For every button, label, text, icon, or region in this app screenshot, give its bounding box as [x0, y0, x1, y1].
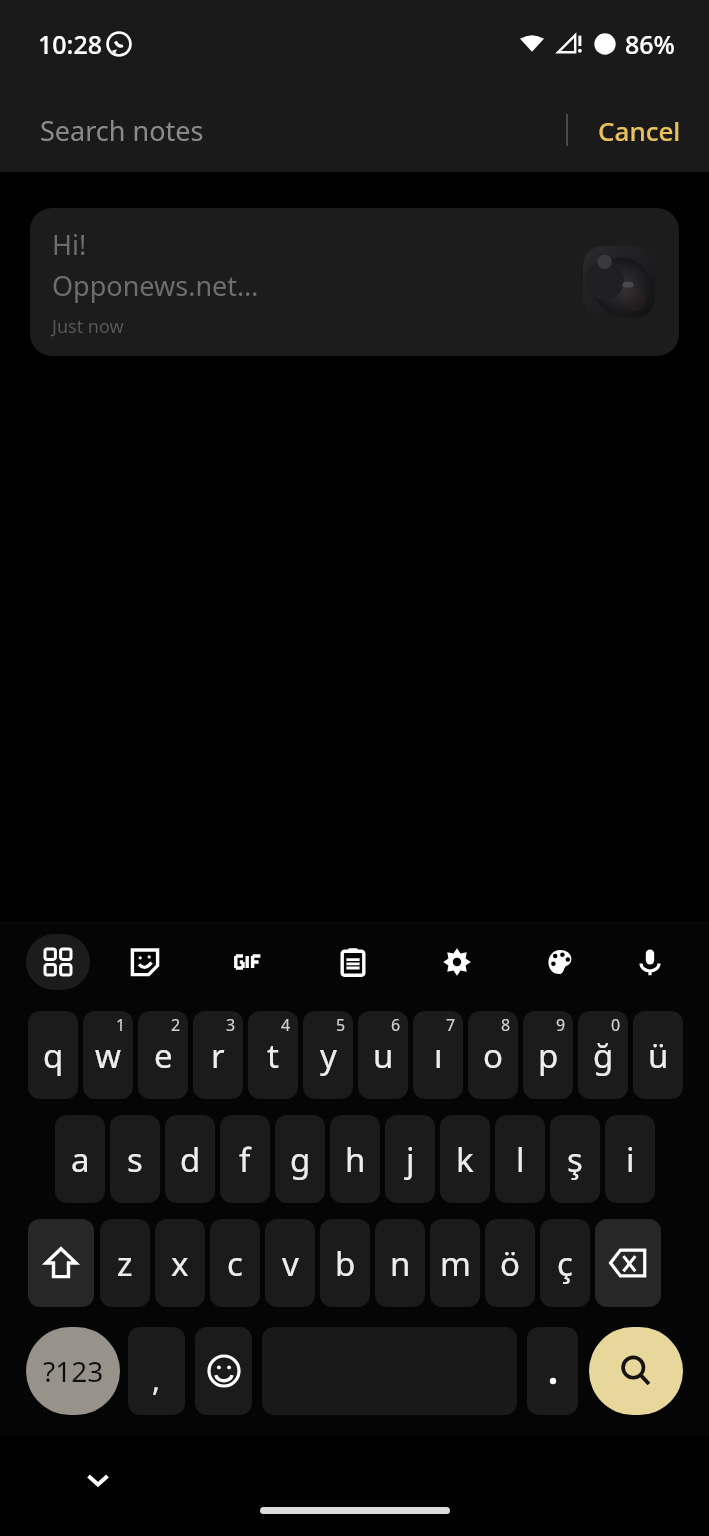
staticText: 5: [336, 1014, 346, 1036]
staticText: Just now: [52, 314, 124, 339]
staticText: g: [290, 1137, 311, 1182]
staticText: ö: [500, 1241, 520, 1286]
staticText: ,: [152, 1359, 161, 1400]
button[interactable]: t: [248, 1011, 298, 1099]
staticText: 8: [501, 1014, 511, 1036]
button[interactable]: a: [55, 1115, 105, 1203]
staticText: ?123: [43, 1352, 104, 1390]
button[interactable]: e: [138, 1011, 188, 1099]
staticText: f: [239, 1137, 251, 1182]
staticText: ü: [648, 1033, 669, 1078]
staticText: y: [320, 1033, 337, 1078]
button[interactable]: Backspace: [595, 1219, 661, 1307]
button[interactable]: p: [523, 1011, 573, 1099]
button[interactable]: v: [265, 1219, 315, 1307]
staticText: k: [456, 1137, 474, 1182]
staticText: Opponews.net…: [52, 267, 259, 304]
staticText: ç: [557, 1241, 573, 1286]
button[interactable]: Search notes: [0, 88, 709, 172]
button[interactable]: i: [605, 1115, 655, 1203]
button[interactable]: ı: [413, 1011, 463, 1099]
staticText: r: [211, 1033, 225, 1078]
staticText: q: [43, 1033, 64, 1078]
staticText: b: [335, 1241, 356, 1286]
staticText: 6: [391, 1014, 401, 1036]
button[interactable]: ö: [485, 1219, 535, 1307]
staticText: a: [71, 1137, 90, 1182]
staticText: 86%: [625, 27, 675, 61]
button[interactable]: w: [83, 1011, 133, 1099]
button[interactable]: ,: [128, 1327, 185, 1415]
staticText: Cancel: [598, 113, 681, 148]
button[interactable]: o: [468, 1011, 518, 1099]
button[interactable]: [527, 1327, 578, 1415]
button[interactable]: s: [110, 1115, 160, 1203]
staticText: m: [440, 1241, 471, 1286]
button[interactable]: r: [193, 1011, 243, 1099]
staticText: 1: [116, 1014, 126, 1036]
button[interactable]: j: [385, 1115, 435, 1203]
staticText: w: [95, 1033, 121, 1078]
button[interactable]: Themes: [532, 934, 588, 990]
staticText: c: [227, 1241, 243, 1286]
button[interactable]: h: [330, 1115, 380, 1203]
staticText: ğ: [593, 1033, 614, 1078]
button[interactable]: g: [275, 1115, 325, 1203]
button[interactable]: ç: [540, 1219, 590, 1307]
button[interactable]: Clipboard: [325, 934, 381, 990]
staticText: e: [154, 1033, 173, 1078]
button[interactable]: GIF: [221, 934, 277, 990]
staticText: n: [390, 1241, 411, 1286]
button[interactable]: d: [165, 1115, 215, 1203]
staticText: z: [117, 1241, 133, 1286]
button[interactable]: Search: [589, 1327, 683, 1415]
staticText: u: [373, 1033, 394, 1078]
button[interactable]: n: [375, 1219, 425, 1307]
button[interactable]: Shift: [28, 1219, 94, 1307]
staticText: 0: [611, 1014, 621, 1036]
staticText: d: [180, 1137, 201, 1182]
button[interactable]: Keyboard modes: [26, 934, 90, 990]
button[interactable]: Voice input: [622, 934, 678, 990]
button[interactable]: x: [155, 1219, 205, 1307]
button[interactable]: ü: [633, 1011, 683, 1099]
staticText: i: [626, 1137, 635, 1182]
staticText: ı: [434, 1033, 443, 1078]
button[interactable]: ş: [550, 1115, 600, 1203]
staticText: 3: [226, 1014, 236, 1036]
staticText: s: [127, 1137, 143, 1182]
button[interactable]: ?123: [26, 1327, 120, 1415]
staticText: x: [171, 1241, 189, 1286]
button[interactable]: q: [28, 1011, 78, 1099]
staticText: 9: [556, 1014, 566, 1036]
button[interactable]: u: [358, 1011, 408, 1099]
button[interactable]: ğ: [578, 1011, 628, 1099]
button[interactable]: Cancel: [570, 97, 709, 164]
staticText: 4: [281, 1014, 291, 1036]
button[interactable]: k: [440, 1115, 490, 1203]
staticText: o: [483, 1033, 503, 1078]
button[interactable]: c: [210, 1219, 260, 1307]
staticText: 10:28: [38, 27, 103, 61]
staticText: ş: [567, 1137, 583, 1182]
button[interactable]: b: [320, 1219, 370, 1307]
button[interactable]: Stickers: [117, 934, 173, 990]
button[interactable]: m: [430, 1219, 480, 1307]
staticText: Hi!: [52, 226, 87, 263]
staticText: t: [267, 1033, 279, 1078]
button[interactable]: y: [303, 1011, 353, 1099]
staticText: v: [282, 1241, 299, 1286]
staticText: 7: [446, 1014, 456, 1036]
staticText: Search notes: [40, 112, 204, 149]
button[interactable]: l: [495, 1115, 545, 1203]
staticText: j: [406, 1137, 415, 1182]
button[interactable]: z: [100, 1219, 150, 1307]
button[interactable]: Settings: [429, 934, 485, 990]
staticText: p: [538, 1033, 559, 1078]
button[interactable]: Emoji: [195, 1327, 252, 1415]
button[interactable]: Hide keyboard: [70, 1452, 126, 1508]
button[interactable]: f: [220, 1115, 270, 1203]
button[interactable]: Hi!: [30, 208, 679, 356]
staticText: 2: [171, 1014, 181, 1036]
